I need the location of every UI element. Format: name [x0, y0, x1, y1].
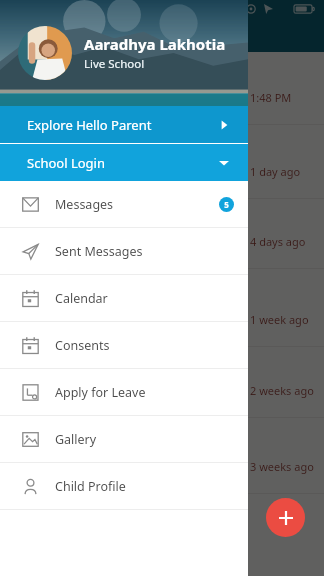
staticText: 1 day ago [250, 164, 301, 179]
staticText: Calendar [55, 290, 234, 307]
staticText: Explore Hello Parent [27, 116, 218, 134]
button[interactable]: Child Profile [0, 463, 248, 509]
button[interactable]: Messages [0, 181, 248, 227]
button[interactable]: Add [266, 498, 305, 537]
button[interactable]: Apply for Leave [0, 369, 248, 415]
staticText: 5 [224, 199, 229, 210]
button[interactable]: Sent Messages [0, 228, 248, 274]
staticText: Child Profile [55, 478, 234, 495]
button[interactable]: Calendar [0, 275, 248, 321]
staticText: Messages [55, 196, 219, 213]
staticText: Sent Messages [55, 243, 234, 260]
staticText: Apply for Leave [55, 384, 234, 401]
button[interactable]: Consents [0, 322, 248, 368]
button[interactable]: Profile photo [18, 26, 72, 80]
staticText: School Login [27, 154, 218, 172]
staticText: Live School [84, 56, 145, 72]
staticText: Aaradhya Lakhotia [84, 34, 226, 54]
staticText: 3 weeks ago [250, 459, 314, 474]
staticText: 1:48 PM [250, 90, 292, 105]
staticText: Consents [55, 337, 234, 354]
staticText: 1 week ago [250, 312, 309, 327]
staticText: 2 weeks ago [250, 383, 314, 398]
button[interactable]: School Login [0, 144, 248, 181]
staticText: Gallery [55, 431, 234, 448]
staticText: 4 days ago [250, 234, 306, 249]
button[interactable]: Gallery [0, 416, 248, 462]
button[interactable]: Explore Hello Parent [0, 106, 248, 143]
